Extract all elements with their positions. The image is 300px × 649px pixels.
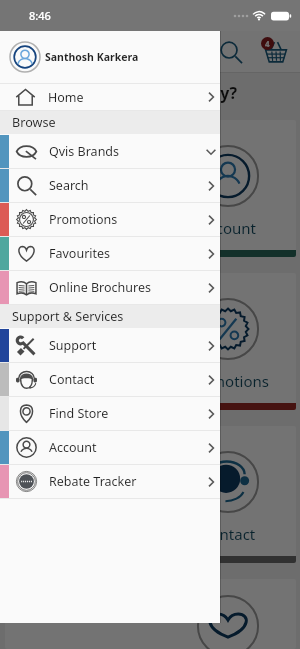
staticText: Support — [49, 337, 97, 354]
button[interactable]: Account — [0, 431, 220, 464]
staticText: Search — [49, 177, 89, 194]
button[interactable]: Favourites — [5, 579, 296, 649]
button[interactable]: Account — [5, 120, 296, 257]
button[interactable]: Rebate Tracker — [0, 465, 220, 498]
staticText: Favourites — [49, 245, 111, 262]
button[interactable]: Contact — [0, 363, 220, 396]
staticText: Online Brochures — [49, 279, 151, 296]
staticText: Account — [199, 218, 257, 238]
staticText: How can we help you today? — [14, 82, 238, 104]
button[interactable]: Home — [0, 84, 220, 110]
button[interactable]: Qvis Brands — [0, 135, 220, 168]
staticText: Qvis Brands — [49, 143, 120, 160]
staticText: Rebate Tracker — [49, 473, 137, 490]
button[interactable]: Promotions — [5, 273, 296, 410]
staticText: 8:46 — [29, 8, 51, 23]
button[interactable]: Promotions — [0, 203, 220, 236]
staticText: Home — [48, 89, 84, 106]
staticText: Santhosh Karkera — [45, 50, 139, 64]
button[interactable]: Find Store — [0, 397, 220, 430]
staticText: Contact — [201, 524, 256, 544]
staticText: Contact — [49, 371, 95, 388]
button[interactable]: Support — [0, 329, 220, 362]
staticText: Find Store — [49, 405, 109, 422]
button[interactable]: Contact — [5, 426, 296, 563]
button[interactable]: Santhosh Karkera — [0, 31, 220, 83]
button[interactable]: Search — [0, 169, 220, 202]
staticText: Browse — [12, 114, 56, 131]
staticText: Promotions — [187, 371, 269, 391]
staticText: Account — [49, 439, 97, 456]
staticText: 4 — [265, 38, 270, 49]
staticText: Promotions — [49, 211, 118, 228]
staticText: Support & Services — [12, 308, 124, 325]
button[interactable]: Favourites — [0, 237, 220, 270]
button[interactable]: Online Brochures — [0, 271, 220, 304]
